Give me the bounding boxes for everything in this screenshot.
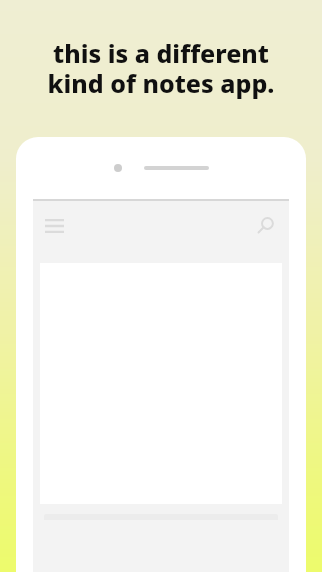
staticText: this is a different kind of notes app.	[12, 36, 310, 100]
button[interactable]: Open navigation menu	[37, 209, 71, 243]
button[interactable]: Search notes	[249, 209, 283, 243]
